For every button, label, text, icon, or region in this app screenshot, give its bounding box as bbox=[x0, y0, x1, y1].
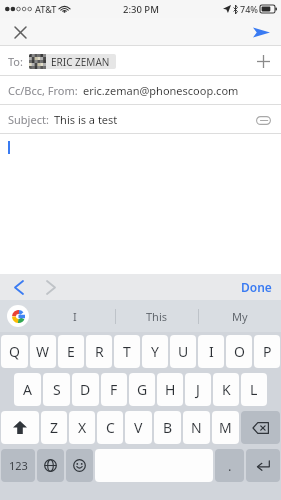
staticText: Y bbox=[151, 342, 159, 361]
button[interactable]: Send bbox=[249, 20, 273, 44]
button[interactable]: Q bbox=[1, 335, 28, 368]
button[interactable]: I bbox=[34, 300, 115, 332]
staticText: A bbox=[23, 380, 32, 399]
staticText: R bbox=[95, 342, 104, 361]
button[interactable]: Attach file bbox=[253, 110, 273, 130]
button[interactable]: Y bbox=[142, 335, 168, 368]
button[interactable]: V bbox=[125, 411, 152, 444]
staticText: My bbox=[232, 309, 248, 324]
staticText: This is a test bbox=[54, 112, 118, 127]
staticText: Z bbox=[50, 418, 59, 437]
button[interactable]: This bbox=[116, 300, 198, 332]
button[interactable]: Z bbox=[41, 411, 67, 444]
staticText: E bbox=[67, 342, 75, 361]
button[interactable]: U bbox=[170, 335, 196, 368]
button[interactable]: Google search bbox=[7, 305, 29, 327]
button[interactable]: M bbox=[212, 411, 239, 444]
staticText: L bbox=[250, 380, 258, 399]
button[interactable]: K bbox=[213, 373, 239, 406]
staticText: O bbox=[234, 342, 245, 361]
button[interactable]: Backspace bbox=[241, 411, 280, 444]
button[interactable]: W bbox=[30, 335, 56, 368]
button[interactable]: To: bbox=[0, 46, 281, 76]
staticText: N bbox=[191, 418, 202, 437]
button[interactable]: C bbox=[97, 411, 123, 444]
button[interactable]: D bbox=[72, 373, 99, 406]
button[interactable]: H bbox=[157, 373, 183, 406]
button[interactable]: Add contact bbox=[253, 51, 273, 71]
staticText: P bbox=[263, 342, 272, 361]
staticText: 2:30 PM bbox=[123, 3, 159, 16]
staticText: C bbox=[106, 418, 115, 437]
button[interactable]: L bbox=[241, 373, 267, 406]
staticText: AT&T bbox=[35, 3, 57, 15]
button[interactable]: Change language bbox=[37, 449, 64, 482]
staticText: U bbox=[178, 342, 189, 361]
button[interactable]: B bbox=[154, 411, 181, 444]
button[interactable]: E bbox=[58, 335, 84, 368]
staticText: B bbox=[163, 418, 173, 437]
staticText: Cc/Bcc, From: bbox=[8, 83, 78, 98]
staticText: W bbox=[36, 342, 50, 361]
staticText: This bbox=[146, 309, 168, 324]
staticText: K bbox=[222, 380, 231, 399]
staticText: V bbox=[134, 418, 143, 437]
button[interactable]: Subject: bbox=[0, 105, 281, 134]
staticText: 123 bbox=[9, 458, 28, 473]
staticText: Done bbox=[241, 279, 272, 295]
staticText: Subject: bbox=[8, 112, 49, 127]
button[interactable]: 123 bbox=[1, 449, 35, 482]
staticText: To: bbox=[8, 54, 23, 69]
staticText: eric.zeman@phonescoop.com bbox=[83, 83, 239, 98]
button[interactable]: O bbox=[226, 335, 252, 368]
button[interactable]: Shift bbox=[1, 411, 39, 444]
staticText: 74% bbox=[240, 3, 258, 15]
button[interactable]: F bbox=[101, 373, 127, 406]
button[interactable]: Cancel bbox=[9, 21, 31, 43]
staticText: D bbox=[80, 380, 91, 399]
button[interactable]: Done bbox=[241, 279, 272, 295]
button[interactable]: Emoji bbox=[66, 449, 93, 482]
button[interactable] bbox=[0, 134, 281, 274]
staticText: . bbox=[228, 457, 232, 475]
staticText: H bbox=[165, 380, 176, 399]
button[interactable]: A bbox=[14, 373, 41, 406]
staticText: J bbox=[196, 380, 200, 399]
staticText: S bbox=[53, 380, 61, 399]
button[interactable]: X bbox=[69, 411, 95, 444]
button[interactable]: I bbox=[198, 335, 224, 368]
staticText: I bbox=[209, 342, 214, 361]
button[interactable]: P bbox=[254, 335, 280, 368]
staticText: Q bbox=[9, 342, 20, 361]
button[interactable]: Return bbox=[246, 449, 280, 482]
button[interactable]: N bbox=[183, 411, 210, 444]
button[interactable]: My bbox=[199, 300, 281, 332]
staticText: T bbox=[123, 342, 131, 361]
button[interactable]: Previous field bbox=[8, 276, 30, 298]
button[interactable]: . bbox=[215, 449, 244, 482]
button[interactable]: Next field bbox=[40, 276, 62, 298]
staticText: I bbox=[73, 309, 77, 324]
staticText: M bbox=[219, 418, 232, 437]
button[interactable]: Cc/Bcc, From: bbox=[0, 76, 281, 105]
button[interactable]: J bbox=[185, 373, 211, 406]
staticText: X bbox=[78, 418, 87, 437]
button[interactable]: T bbox=[114, 335, 140, 368]
staticText: G bbox=[137, 380, 148, 399]
staticText: ERIC ZEMAN bbox=[51, 55, 110, 69]
button[interactable]: R bbox=[86, 335, 112, 368]
button[interactable]: G bbox=[129, 373, 155, 406]
staticText: F bbox=[110, 380, 118, 399]
button[interactable]: S bbox=[43, 373, 70, 406]
